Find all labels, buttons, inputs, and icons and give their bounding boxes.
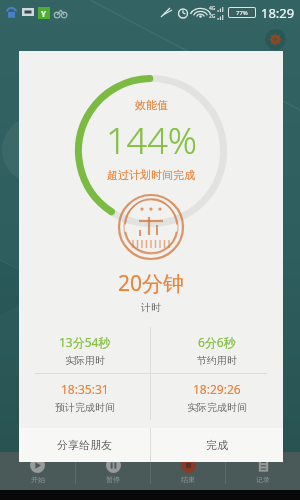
- staticText: 开始: [31, 475, 45, 484]
- button[interactable]: 完成: [151, 428, 283, 462]
- button[interactable]: 暂停: [76, 452, 150, 490]
- staticText: 实际完成时间: [187, 401, 247, 414]
- staticText: 6分6秒: [198, 334, 236, 350]
- staticText: Y: [41, 8, 47, 19]
- staticText: 分享给朋友: [57, 438, 112, 452]
- staticText: 18:29: [261, 4, 295, 22]
- staticText: 20分钟: [118, 269, 185, 298]
- staticText: 13分54秒: [59, 334, 111, 350]
- button[interactable]: 结束: [151, 452, 225, 490]
- button[interactable]: 记录: [226, 452, 300, 490]
- button[interactable]: 分享给朋友: [19, 428, 150, 462]
- staticText: 4G: [209, 5, 216, 12]
- staticText: 144%: [106, 116, 197, 165]
- staticText: 77%: [236, 9, 248, 17]
- staticText: 2G: [209, 13, 216, 20]
- staticText: 超过计划时间完成: [107, 168, 195, 182]
- staticText: 计时: [141, 301, 161, 314]
- staticText: 记录: [256, 475, 270, 484]
- staticText: 节约用时: [197, 354, 237, 367]
- staticText: 实际用时: [65, 354, 105, 367]
- staticText: 暂停: [106, 475, 120, 484]
- staticText: 完成: [206, 438, 228, 452]
- staticText: 预计完成时间: [55, 401, 115, 414]
- staticText: 18:35:31: [61, 381, 109, 397]
- staticText: 结束: [181, 475, 195, 484]
- button[interactable]: 开始: [0, 452, 75, 490]
- staticText: 18:29:26: [193, 381, 241, 397]
- staticText: 效能值: [135, 98, 168, 112]
- button[interactable]: Settings: [265, 29, 286, 50]
